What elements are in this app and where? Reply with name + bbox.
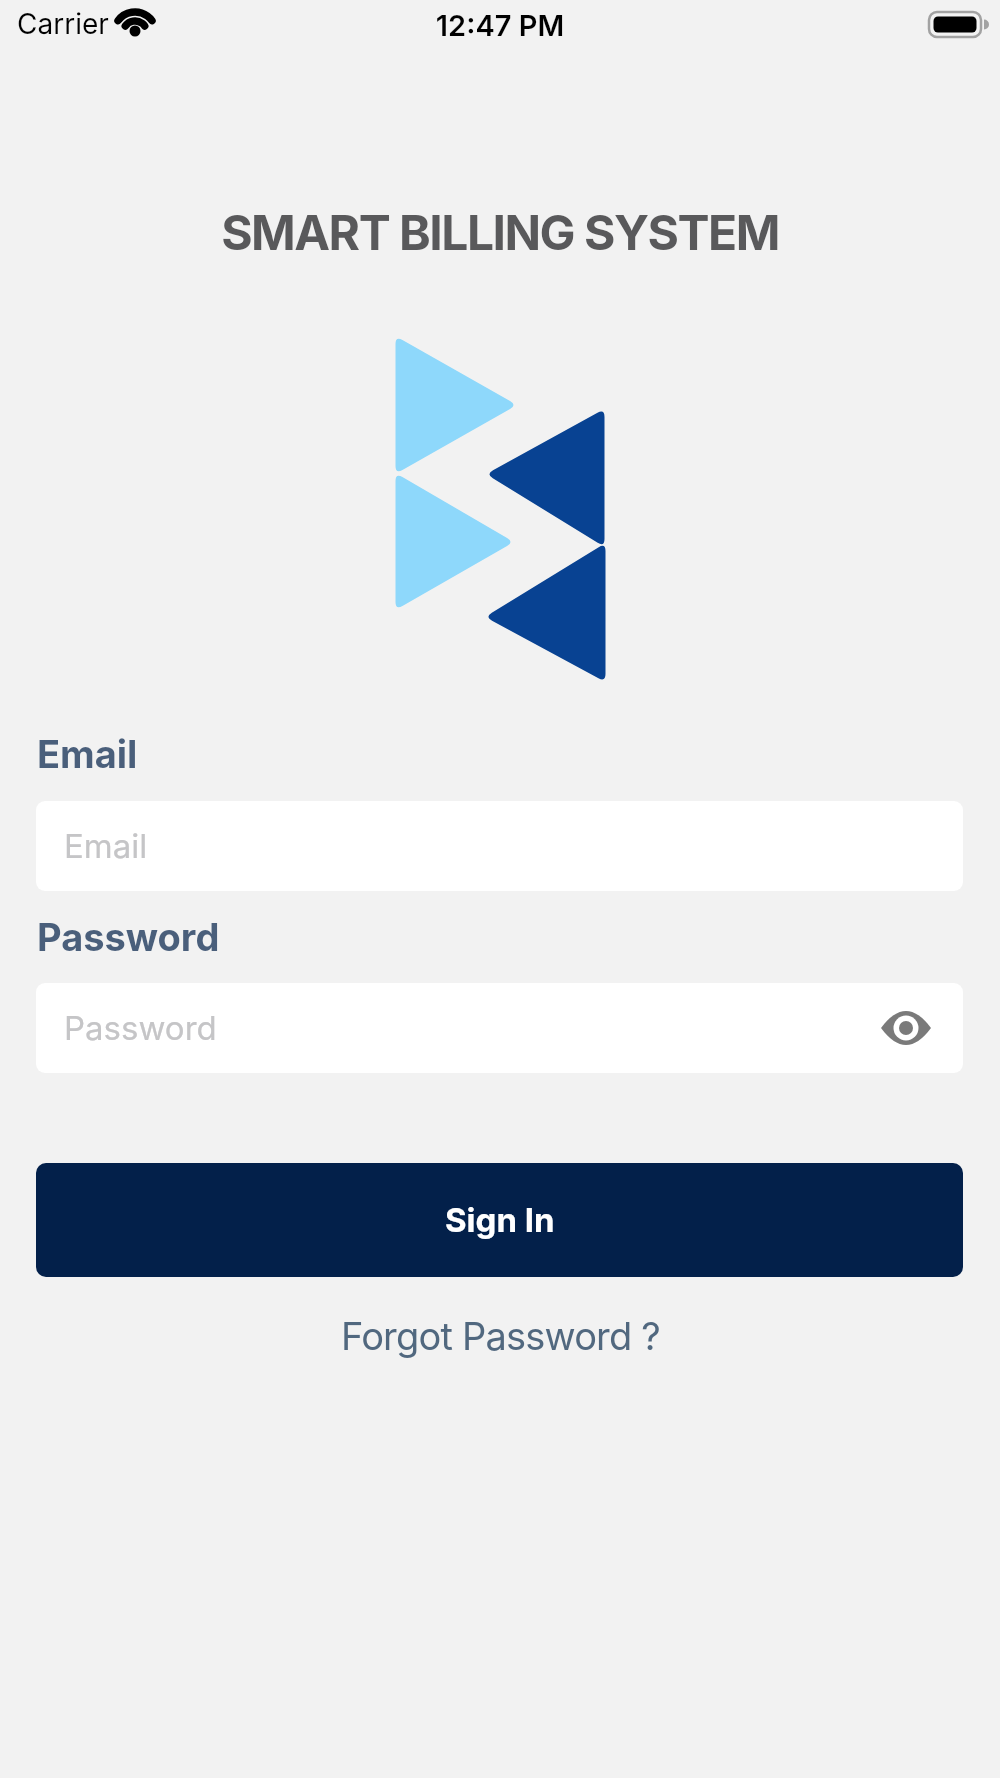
staticText: Email — [64, 826, 148, 866]
button[interactable] — [868, 990, 944, 1066]
staticText: Carrier — [17, 7, 109, 41]
button[interactable]: Sign In — [36, 1163, 963, 1277]
staticText: Sign In — [445, 1200, 555, 1240]
button[interactable]: Password — [36, 983, 963, 1073]
staticText: Forgot Password ? — [341, 1313, 660, 1359]
button[interactable]: Email — [36, 801, 963, 891]
staticText: Password — [64, 1008, 217, 1048]
staticText: Email — [37, 731, 138, 777]
staticText: 12:47 PM — [0, 8, 1000, 43]
staticText: SMART BILLING SYSTEM — [0, 203, 1000, 261]
button[interactable]: Forgot Password ? — [341, 1313, 660, 1359]
staticText: Password — [37, 914, 220, 960]
